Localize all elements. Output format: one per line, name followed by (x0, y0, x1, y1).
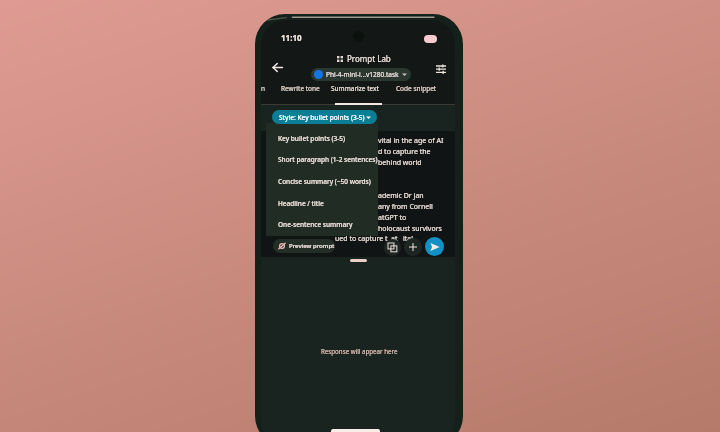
button[interactable]: Copy (384, 239, 401, 256)
staticText: Code snippet (396, 84, 437, 93)
staticText: ued to capture t at ital (335, 234, 414, 244)
button[interactable]: Style: Key bullet points (3-5) (272, 110, 377, 124)
button[interactable]: Phi-4-mini-i...v1280.task (311, 68, 411, 81)
button[interactable]: Short paragraph (1-2 sentences) (278, 155, 378, 164)
staticText: any from Cornell (378, 202, 433, 212)
button[interactable]: One-sentence summary (278, 220, 353, 229)
staticText: holocaust survivors (378, 224, 442, 234)
staticText: atGPT to (378, 213, 407, 223)
button[interactable]: Tune settings (432, 60, 450, 78)
button[interactable]: Summarize text (329, 81, 380, 95)
staticText: behind world (378, 158, 422, 168)
staticText: n (261, 84, 266, 93)
staticText: Preview prompt (289, 242, 335, 250)
button[interactable]: Back (268, 58, 286, 76)
button[interactable]: Concise summary (~50 words) (278, 177, 371, 186)
staticText: d to capture the (378, 147, 431, 157)
staticText: ademic Dr Jan (378, 191, 424, 201)
button[interactable]: Key bullet points (3-5) (278, 134, 346, 143)
staticText: Prompt Lab (347, 53, 391, 64)
button[interactable]: Send (425, 237, 444, 256)
staticText: Phi-4-mini-i...v1280.task (326, 70, 399, 79)
button[interactable]: Headline / title (278, 199, 324, 208)
staticText: 11:10 (281, 32, 302, 43)
button[interactable]: Preview prompt (273, 239, 335, 253)
staticText: Rewrite tone (281, 84, 320, 93)
staticText: Summarize text (331, 84, 379, 93)
staticText: Response will appear here (321, 347, 398, 355)
staticText: vital in the age of AI (378, 136, 444, 146)
staticText: Style: Key bullet points (3-5) (279, 113, 365, 122)
button[interactable]: Code snippet (391, 81, 441, 95)
button[interactable]: Rewrite tone (278, 81, 322, 95)
button[interactable]: Add attachment (404, 238, 422, 256)
